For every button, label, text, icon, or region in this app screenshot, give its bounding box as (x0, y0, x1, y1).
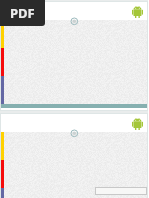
other: Android logo (132, 6, 143, 18)
other: Android logo (132, 118, 143, 130)
staticText: PDF (10, 4, 35, 22)
button[interactable]: PDF document (0, 0, 45, 26)
